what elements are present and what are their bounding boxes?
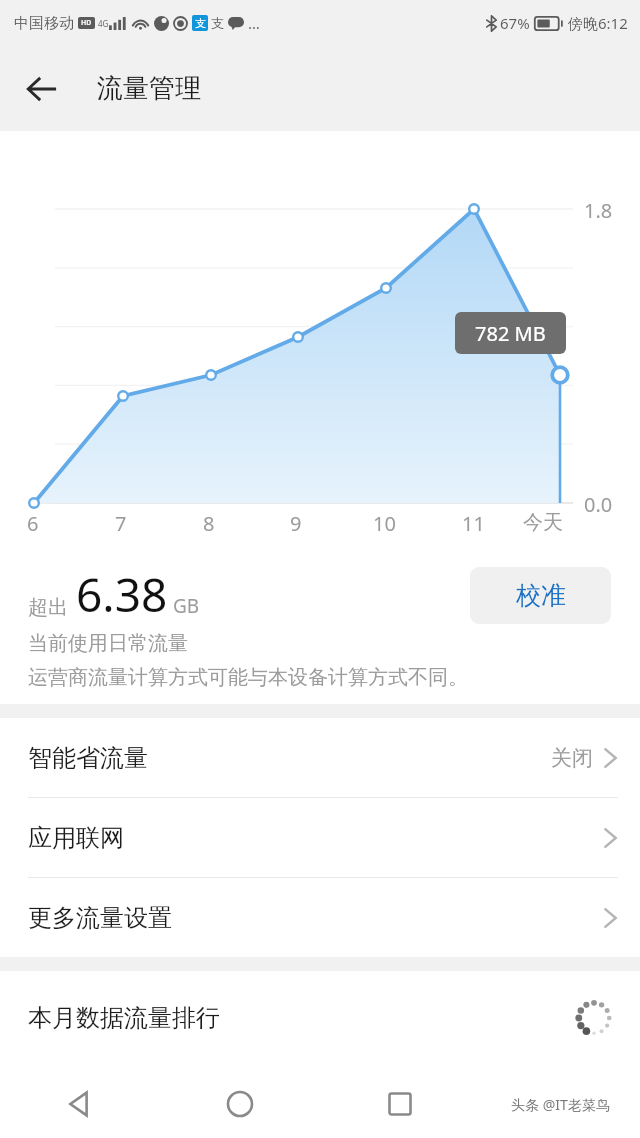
staticText: 1.8 (584, 197, 613, 224)
button[interactable]: 782 MB (455, 312, 566, 354)
staticText: GB (173, 593, 200, 619)
staticText: 更多流量设置 (28, 903, 172, 933)
button[interactable]: Back (0, 1070, 160, 1138)
button[interactable]: Back (12, 59, 72, 119)
staticText: 校准 (516, 580, 566, 611)
staticText: 67% (500, 13, 530, 33)
staticText: 运营商流量计算方式可能与本设备计算方式不同。 (28, 665, 468, 690)
staticText: 11 (462, 510, 485, 537)
staticText: 6.38 (76, 563, 168, 626)
staticText: HD (81, 18, 92, 28)
staticText: 支 (211, 15, 224, 31)
staticText: 8 (203, 510, 215, 537)
staticText: 傍晚6:12 (568, 13, 628, 33)
staticText: 头条 @IT老菜鸟 (511, 1095, 610, 1114)
staticText: 9 (290, 510, 302, 537)
staticText: 本月数据流量排行 (28, 1003, 220, 1033)
button[interactable]: 智能省流量 (0, 718, 640, 798)
staticText: 0.0 (584, 491, 613, 518)
staticText: 智能省流量 (28, 743, 148, 773)
staticText: 超出 (28, 595, 68, 620)
staticText: … (248, 13, 260, 33)
staticText: 4G (98, 18, 109, 29)
staticText: 782 MB (475, 320, 546, 347)
staticText: 关闭 (551, 745, 593, 771)
staticText: 中国移动 (14, 14, 74, 33)
button[interactable]: 应用联网 (0, 798, 640, 878)
staticText: 支 (195, 16, 206, 30)
staticText: 10 (373, 510, 396, 537)
button[interactable]: 校准 (470, 567, 611, 624)
button[interactable]: Recents (320, 1070, 480, 1138)
button[interactable]: 本月数据流量排行 (0, 971, 640, 1065)
button[interactable]: Home (160, 1070, 320, 1138)
staticText: 应用联网 (28, 823, 124, 853)
staticText: 流量管理 (97, 72, 201, 105)
staticText: 当前使用日常流量 (28, 631, 188, 656)
other: Loading (574, 998, 614, 1038)
staticText: 6 (27, 510, 39, 537)
staticText: 今天 (523, 510, 563, 535)
button[interactable]: 更多流量设置 (0, 878, 640, 957)
staticText: 7 (115, 510, 127, 537)
